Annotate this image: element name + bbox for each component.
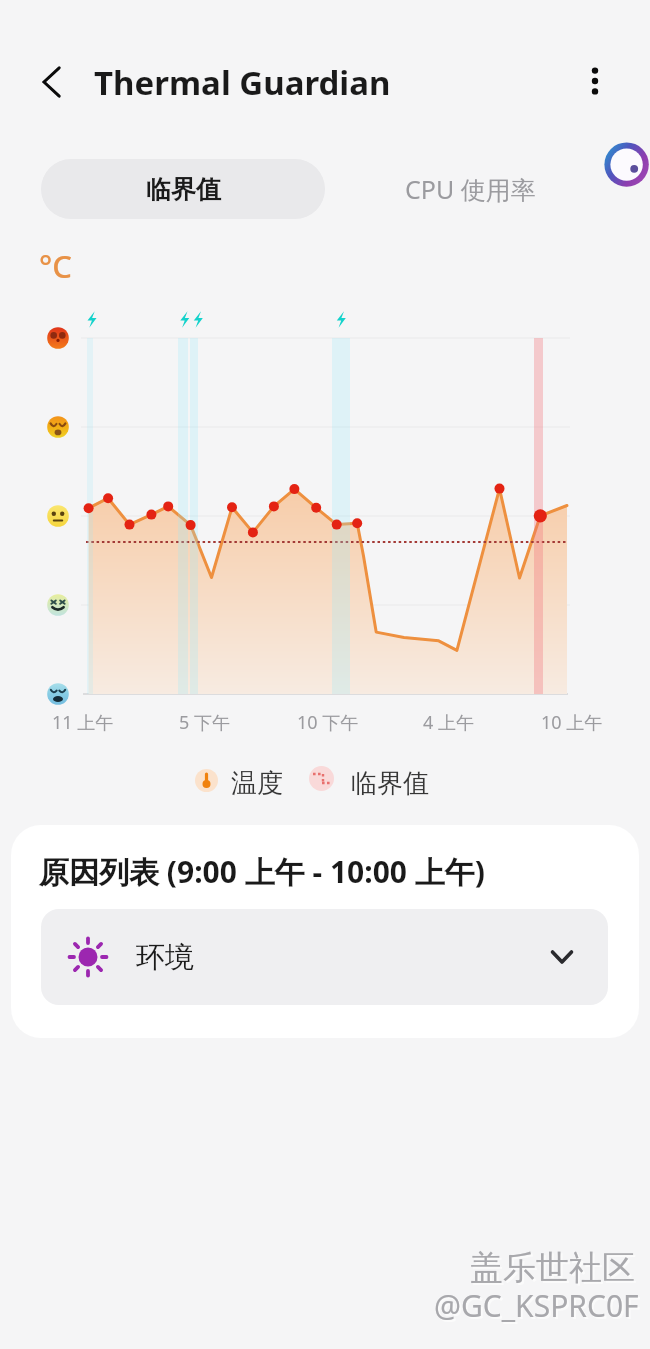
button[interactable]: More options bbox=[571, 57, 619, 105]
staticText: @GC_KSPRC0F bbox=[434, 1285, 639, 1326]
staticText: 盖乐世社区 bbox=[470, 1247, 635, 1289]
staticText: 10 下午 bbox=[297, 710, 359, 735]
staticText: 4 上午 bbox=[423, 710, 474, 735]
button[interactable]: Assistant bbox=[604, 142, 650, 188]
button[interactable] bbox=[195, 769, 218, 792]
button[interactable]: 临界值 bbox=[41, 159, 325, 219]
staticText: CPU 使用率 bbox=[405, 172, 536, 206]
staticText: 11 上午 bbox=[52, 710, 114, 735]
staticText: 环境 bbox=[136, 939, 194, 976]
staticText: 盖乐世社区 bbox=[472, 1249, 637, 1291]
staticText: 临界值 bbox=[146, 174, 221, 205]
button[interactable] bbox=[309, 766, 334, 791]
staticText: 温度 bbox=[231, 767, 283, 800]
button[interactable]: 环境 bbox=[41, 909, 608, 1005]
staticText: 原因列表 (9:00 上午 - 10:00 上午) bbox=[39, 851, 485, 892]
staticText: 10 上午 bbox=[541, 710, 603, 735]
staticText: 临界值 bbox=[351, 767, 429, 800]
staticText: Thermal Guardian bbox=[94, 60, 391, 105]
button[interactable]: Back bbox=[28, 58, 76, 106]
staticText: °C bbox=[39, 245, 72, 287]
button[interactable]: CPU 使用率 bbox=[325, 159, 615, 219]
staticText: 5 下午 bbox=[179, 710, 230, 735]
staticText: @GC_KSPRC0F bbox=[436, 1287, 641, 1328]
